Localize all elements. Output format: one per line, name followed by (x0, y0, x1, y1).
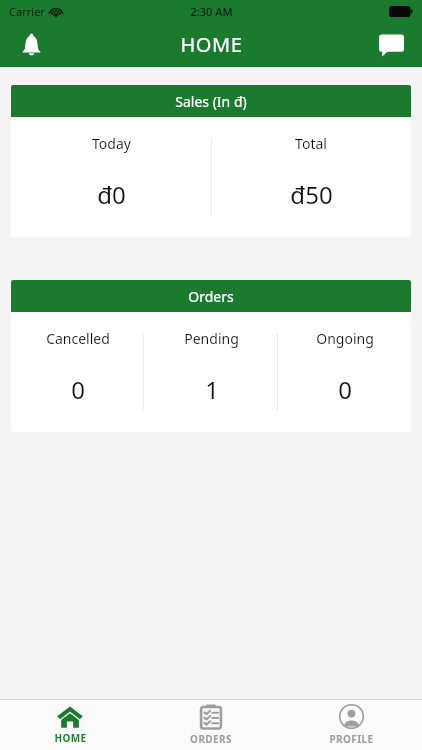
staticText: Pending (184, 329, 239, 348)
staticText: PROFILE (329, 732, 374, 746)
staticText: 1 (205, 373, 219, 406)
button[interactable]: HOME (0, 700, 140, 750)
staticText: đ50 (290, 178, 333, 211)
button[interactable]: Orders (11, 280, 411, 432)
button[interactable]: Notifications (10, 24, 52, 66)
button[interactable]: Sales (In đ) (11, 85, 411, 237)
staticText: Total (295, 134, 327, 153)
staticText: Orders (188, 287, 234, 306)
button[interactable]: PROFILE (281, 700, 422, 750)
staticText: HOME (54, 731, 87, 745)
staticText: đ0 (97, 178, 126, 211)
button[interactable]: ORDERS (140, 700, 281, 750)
staticText: Cancelled (46, 329, 110, 348)
staticText: 2:30 AM (190, 4, 233, 19)
staticText: Today (92, 134, 131, 153)
staticText: 0 (71, 373, 85, 406)
button[interactable]: Messages (370, 24, 412, 66)
staticText: 0 (338, 373, 352, 406)
staticText: ORDERS (190, 732, 232, 746)
staticText: Sales (In đ) (175, 92, 247, 111)
staticText: Ongoing (316, 329, 374, 348)
staticText: Carrier (9, 4, 45, 19)
staticText: HOME (180, 31, 243, 58)
